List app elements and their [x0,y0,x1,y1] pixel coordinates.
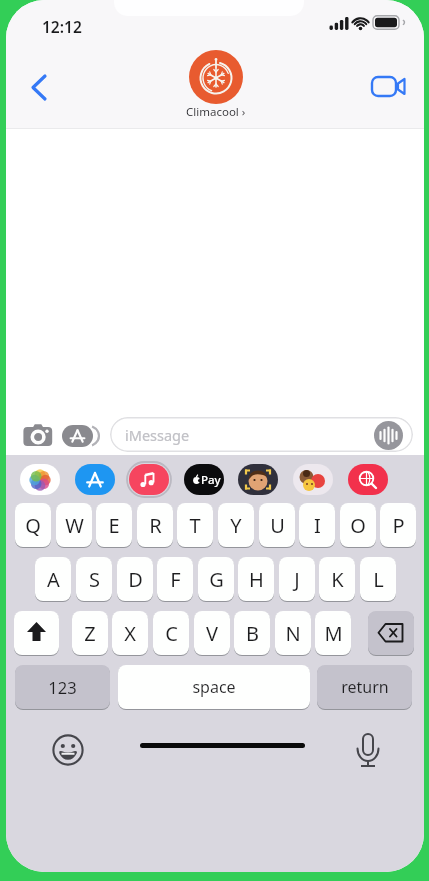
button[interactable]: E [96,503,132,547]
button[interactable] [14,611,59,655]
button[interactable]: V [194,611,230,655]
button[interactable]: M [315,611,351,655]
staticText: M [324,620,343,647]
staticText: 12:12 [42,16,82,37]
button[interactable]: 123 [15,665,110,709]
button[interactable] [348,464,388,495]
button[interactable]: space [118,665,310,709]
staticText: P [392,512,405,539]
staticText: Q [25,512,41,539]
staticText: O [350,512,366,539]
button[interactable] [129,464,169,495]
staticText: N [285,620,301,647]
button[interactable]: B [234,611,270,655]
staticText: X [124,620,136,647]
button[interactable] [374,421,403,450]
staticText: K [331,566,344,593]
button[interactable] [368,611,414,655]
staticText: F [170,566,181,593]
staticText: H [249,566,264,593]
button[interactable]: D [117,557,153,601]
button[interactable] [75,464,115,495]
staticText: Pay [201,472,221,488]
button[interactable] [238,464,278,495]
button[interactable]: F [157,557,193,601]
button[interactable] [62,425,93,447]
button[interactable]: H [238,557,274,601]
staticText: I [314,512,321,539]
button[interactable]: return [317,665,412,709]
button[interactable]: P [380,503,416,547]
button[interactable]: Y [218,503,254,547]
button[interactable]: L [360,557,396,601]
button[interactable]: N [275,611,311,655]
button[interactable]: R [137,503,173,547]
staticText: C [165,620,178,647]
staticText: T [189,512,201,539]
button[interactable]: T [177,503,213,547]
staticText: J [294,566,300,593]
button[interactable]: U [259,503,295,547]
button[interactable]: Pay [184,464,224,495]
button[interactable]: J [279,557,315,601]
button[interactable] [368,68,412,104]
staticText: space [192,676,236,698]
button[interactable]: I [299,503,335,547]
staticText: V [206,620,218,647]
button[interactable] [22,66,56,100]
button[interactable]: G [198,557,234,601]
staticText: iMessage [125,425,190,445]
button[interactable] [293,464,333,495]
staticText: A [47,566,60,593]
staticText: W [65,512,84,539]
staticText: B [246,620,259,647]
staticText: S [89,566,100,593]
button[interactable] [20,464,60,495]
button[interactable]: iMessage [110,417,413,452]
button[interactable]: K [319,557,355,601]
staticText: U [270,512,285,539]
button[interactable] [189,50,243,104]
button[interactable]: O [340,503,376,547]
button[interactable] [23,423,59,449]
staticText: return [341,676,389,698]
button[interactable]: Q [15,503,51,547]
staticText: Climacool › [186,104,246,120]
button[interactable]: X [112,611,148,655]
button[interactable]: C [153,611,189,655]
staticText: L [373,566,384,593]
staticText: D [128,566,143,593]
staticText: Z [84,620,96,647]
button[interactable]: W [56,503,92,547]
staticText: 123 [48,676,77,698]
staticText: R [149,512,162,539]
staticText: G [209,566,224,593]
staticText: Y [230,512,242,539]
button[interactable]: Z [72,611,108,655]
button[interactable]: S [76,557,112,601]
staticText: E [108,512,120,539]
button[interactable]: A [35,557,71,601]
